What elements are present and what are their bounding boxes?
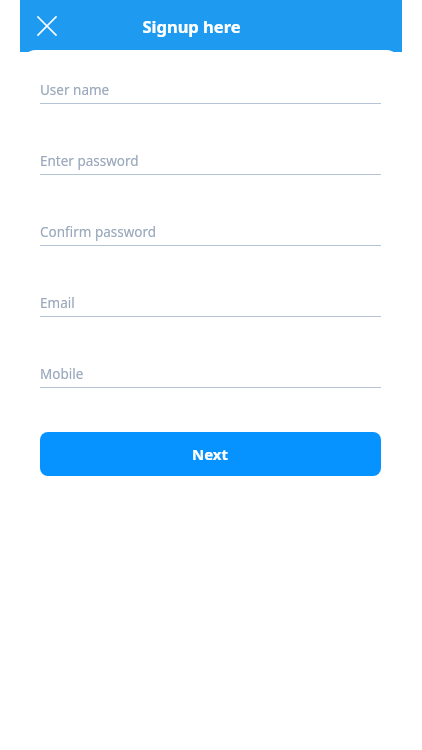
staticText: Mobile xyxy=(40,365,84,383)
button[interactable]: Confirm password xyxy=(40,213,381,246)
staticText: Confirm password xyxy=(40,223,157,241)
staticText: Enter password xyxy=(40,152,139,170)
staticText: Next xyxy=(192,444,229,464)
button[interactable]: Mobile xyxy=(40,355,381,388)
button[interactable]: Email xyxy=(40,284,381,317)
button[interactable]: Enter password xyxy=(40,142,381,175)
staticText: Email xyxy=(40,294,75,312)
button[interactable]: Next xyxy=(40,432,381,476)
staticText: User name xyxy=(40,81,110,99)
staticText: Signup here xyxy=(142,15,241,37)
button[interactable]: Close xyxy=(27,6,67,46)
button[interactable]: User name xyxy=(40,71,381,104)
